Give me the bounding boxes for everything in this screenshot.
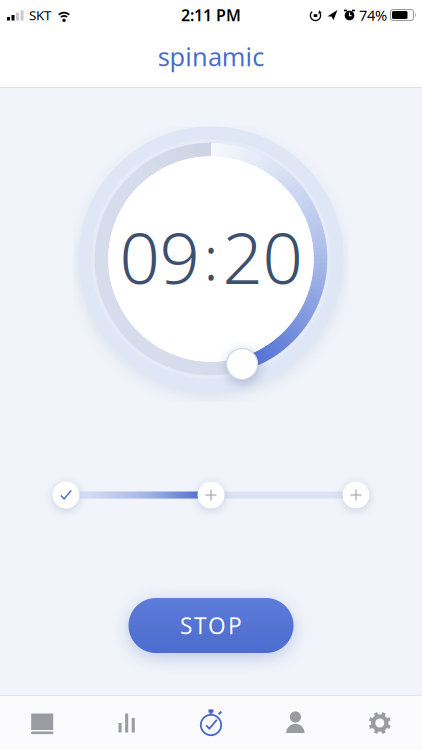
button[interactable]: Add interval [342, 481, 369, 508]
staticText: 74% [359, 5, 387, 25]
button[interactable]: Profile [253, 696, 338, 750]
staticText: 09 [119, 210, 199, 303]
staticText: SKT [29, 6, 51, 24]
staticText: 20 [222, 210, 302, 303]
button[interactable]: Dashboard [0, 696, 84, 750]
staticText: STOP [180, 610, 242, 640]
button[interactable]: Confirm [52, 481, 79, 508]
staticText: 2:11 PM [181, 4, 241, 26]
staticText: spinamic [158, 40, 264, 73]
button[interactable]: Statistics [84, 696, 169, 750]
button[interactable]: Settings [338, 696, 422, 750]
button[interactable]: STOP [128, 598, 293, 653]
staticText: : [203, 216, 218, 297]
button[interactable]: Timer [169, 696, 253, 750]
button[interactable]: Timer position [227, 348, 258, 379]
button[interactable]: Add time [197, 481, 224, 508]
